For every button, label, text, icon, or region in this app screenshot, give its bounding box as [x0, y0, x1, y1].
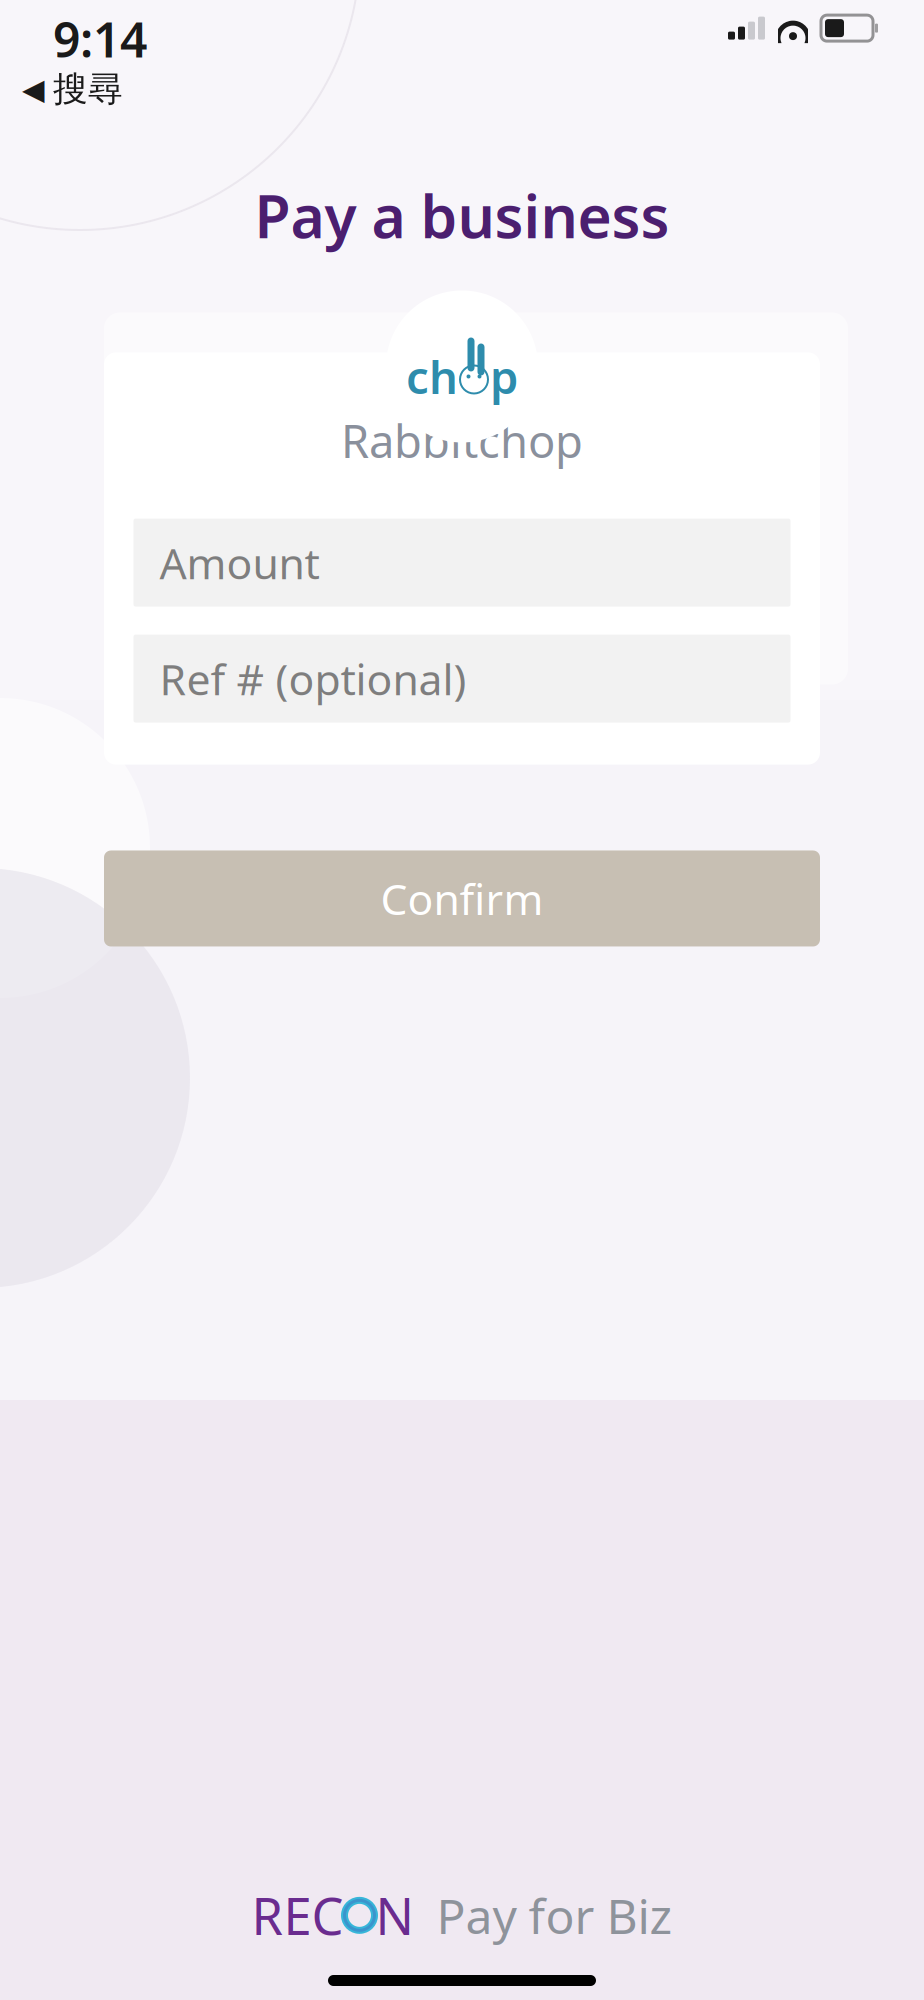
button[interactable]: Amount [133, 519, 790, 607]
staticText: Pay for Biz [436, 1883, 672, 1947]
button[interactable]: Ref # (optional) [133, 635, 790, 723]
staticText: Amount [159, 534, 319, 591]
staticText: N [375, 1882, 414, 1949]
button[interactable]: ◀ [0, 64, 123, 115]
staticText: 搜尋 [53, 68, 123, 111]
button[interactable]: Confirm [104, 850, 820, 946]
staticText: ch [406, 346, 458, 407]
staticText: ◀ [22, 73, 45, 106]
staticText: p [490, 346, 518, 407]
staticText: REC [251, 1882, 343, 1949]
staticText: Rabbitchop [341, 410, 583, 471]
staticText: Ref # (optional) [159, 650, 466, 707]
staticText: 9:14 [53, 7, 147, 71]
staticText: Pay a business [254, 177, 669, 254]
staticText: Confirm [380, 870, 543, 927]
